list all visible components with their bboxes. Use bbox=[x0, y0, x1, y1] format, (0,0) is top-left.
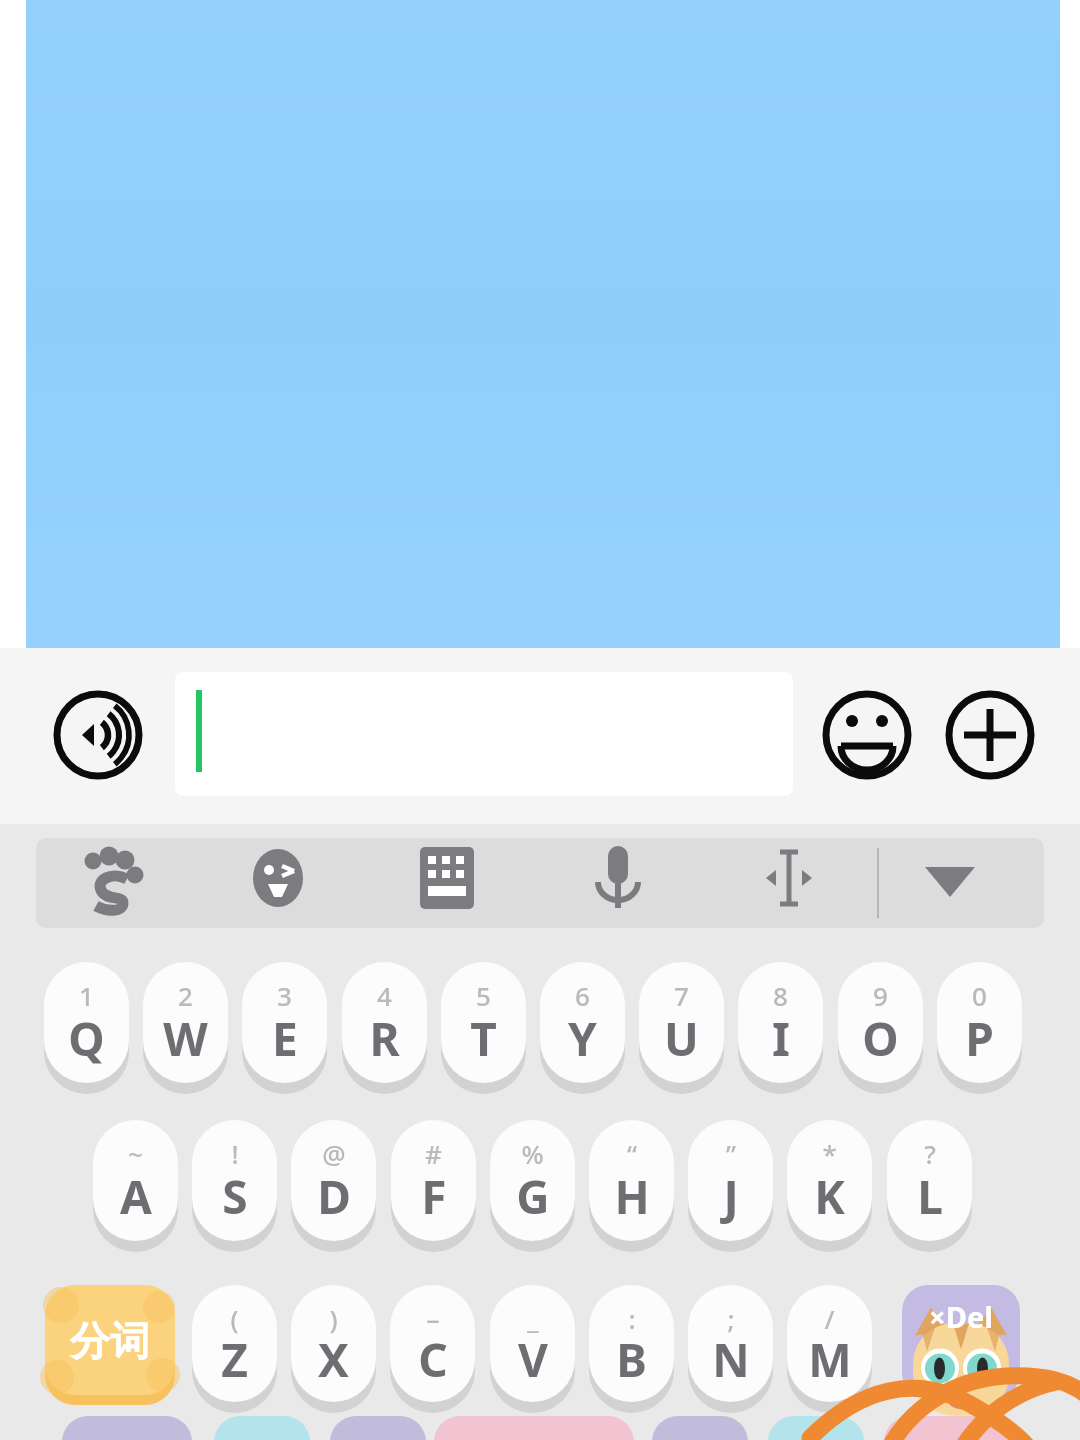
staticText: E bbox=[272, 1007, 298, 1070]
button[interactable]: 4 bbox=[342, 962, 427, 1090]
button[interactable] bbox=[884, 1416, 1014, 1440]
staticText: T bbox=[470, 1007, 497, 1070]
button[interactable]: * bbox=[787, 1120, 872, 1248]
staticText: _ bbox=[527, 1301, 539, 1336]
staticText: 4 bbox=[377, 978, 392, 1013]
button[interactable]: 7 bbox=[639, 962, 724, 1090]
button[interactable]: Emoji bbox=[822, 690, 912, 780]
staticText: – bbox=[426, 1301, 440, 1336]
button[interactable]: : bbox=[589, 1285, 674, 1409]
staticText: 5 bbox=[476, 978, 491, 1013]
button[interactable]: % bbox=[490, 1120, 575, 1248]
button[interactable]: “ bbox=[589, 1120, 674, 1248]
staticText: F bbox=[421, 1165, 447, 1228]
staticText: J bbox=[723, 1165, 739, 1228]
staticText: B bbox=[616, 1328, 647, 1391]
staticText: ” bbox=[726, 1136, 736, 1171]
staticText: ×Del bbox=[929, 1297, 993, 1336]
staticText: D bbox=[317, 1165, 351, 1228]
button[interactable]: Emoticons bbox=[228, 838, 328, 923]
staticText: : bbox=[628, 1301, 636, 1336]
staticText: 3 bbox=[277, 978, 292, 1013]
staticText: 6 bbox=[575, 978, 590, 1013]
staticText: L bbox=[917, 1165, 943, 1228]
staticText: # bbox=[425, 1136, 442, 1171]
button[interactable]: 3 bbox=[242, 962, 327, 1090]
button[interactable]: Sogou input bbox=[60, 838, 160, 923]
staticText: 2 bbox=[178, 978, 193, 1013]
staticText: U bbox=[664, 1007, 699, 1070]
staticText: K bbox=[814, 1165, 845, 1228]
button[interactable]: 5 bbox=[441, 962, 526, 1090]
staticText: ( bbox=[230, 1301, 239, 1336]
staticText: 7 bbox=[674, 978, 689, 1013]
staticText: 1 bbox=[79, 978, 94, 1013]
button[interactable]: @ bbox=[291, 1120, 376, 1248]
staticText: @ bbox=[322, 1136, 346, 1171]
button[interactable] bbox=[652, 1416, 748, 1440]
button[interactable] bbox=[62, 1416, 192, 1440]
staticText: 8 bbox=[773, 978, 788, 1013]
staticText: M bbox=[808, 1328, 852, 1391]
staticText: P bbox=[965, 1007, 994, 1070]
staticText: Z bbox=[221, 1328, 248, 1391]
button[interactable]: ; bbox=[688, 1285, 773, 1409]
button[interactable] bbox=[768, 1416, 864, 1440]
button[interactable]: 分词 bbox=[45, 1285, 175, 1403]
button[interactable] bbox=[175, 672, 793, 796]
staticText: G bbox=[516, 1165, 550, 1228]
button[interactable]: ! bbox=[192, 1120, 277, 1248]
button[interactable]: Move cursor bbox=[739, 838, 839, 923]
staticText: ? bbox=[924, 1136, 936, 1171]
button[interactable]: / bbox=[787, 1285, 872, 1409]
button[interactable]: Hide keyboard bbox=[900, 838, 1000, 923]
button[interactable]: 6 bbox=[540, 962, 625, 1090]
staticText: % bbox=[521, 1136, 544, 1171]
staticText: Q bbox=[68, 1007, 105, 1070]
staticText: S bbox=[222, 1165, 248, 1228]
button[interactable]: 0 bbox=[937, 962, 1022, 1090]
staticText: ! bbox=[231, 1136, 239, 1171]
button[interactable] bbox=[330, 1416, 426, 1440]
button[interactable]: Voice typing bbox=[568, 838, 668, 923]
button[interactable]: ? bbox=[887, 1120, 972, 1248]
staticText: ~ bbox=[128, 1136, 143, 1171]
staticText: R bbox=[369, 1007, 400, 1070]
staticText: X bbox=[318, 1328, 349, 1391]
button[interactable]: _ bbox=[490, 1285, 575, 1409]
staticText: I bbox=[772, 1007, 790, 1070]
button[interactable]: ~ bbox=[93, 1120, 178, 1248]
staticText: 0 bbox=[972, 978, 987, 1013]
button[interactable]: Voice input bbox=[53, 690, 143, 780]
button[interactable]: 1 bbox=[44, 962, 129, 1090]
staticText: N bbox=[712, 1328, 750, 1391]
staticText: O bbox=[862, 1007, 899, 1070]
staticText: ; bbox=[727, 1301, 735, 1336]
staticText: / bbox=[824, 1301, 835, 1336]
button[interactable]: 8 bbox=[738, 962, 823, 1090]
button[interactable]: Keyboard layout bbox=[397, 838, 497, 923]
staticText: 分词 bbox=[70, 1316, 150, 1366]
staticText: Y bbox=[568, 1007, 597, 1070]
button[interactable]: More options bbox=[945, 690, 1035, 780]
button[interactable]: 2 bbox=[143, 962, 228, 1090]
staticText: C bbox=[418, 1328, 448, 1391]
staticText: H bbox=[614, 1165, 650, 1228]
staticText: * bbox=[822, 1136, 837, 1171]
button[interactable] bbox=[434, 1416, 634, 1440]
button[interactable] bbox=[214, 1416, 310, 1440]
button[interactable]: ” bbox=[688, 1120, 773, 1248]
button[interactable]: # bbox=[391, 1120, 476, 1248]
button[interactable]: 9 bbox=[838, 962, 923, 1090]
staticText: “ bbox=[627, 1136, 637, 1171]
staticText: A bbox=[120, 1165, 152, 1228]
button[interactable]: – bbox=[390, 1285, 475, 1409]
button[interactable]: ) bbox=[291, 1285, 376, 1409]
button[interactable]: ( bbox=[192, 1285, 277, 1409]
staticText: V bbox=[518, 1328, 548, 1391]
staticText: 9 bbox=[873, 978, 888, 1013]
staticText: ) bbox=[329, 1301, 338, 1336]
button[interactable]: Delete bbox=[902, 1285, 1020, 1403]
staticText: W bbox=[163, 1007, 208, 1070]
